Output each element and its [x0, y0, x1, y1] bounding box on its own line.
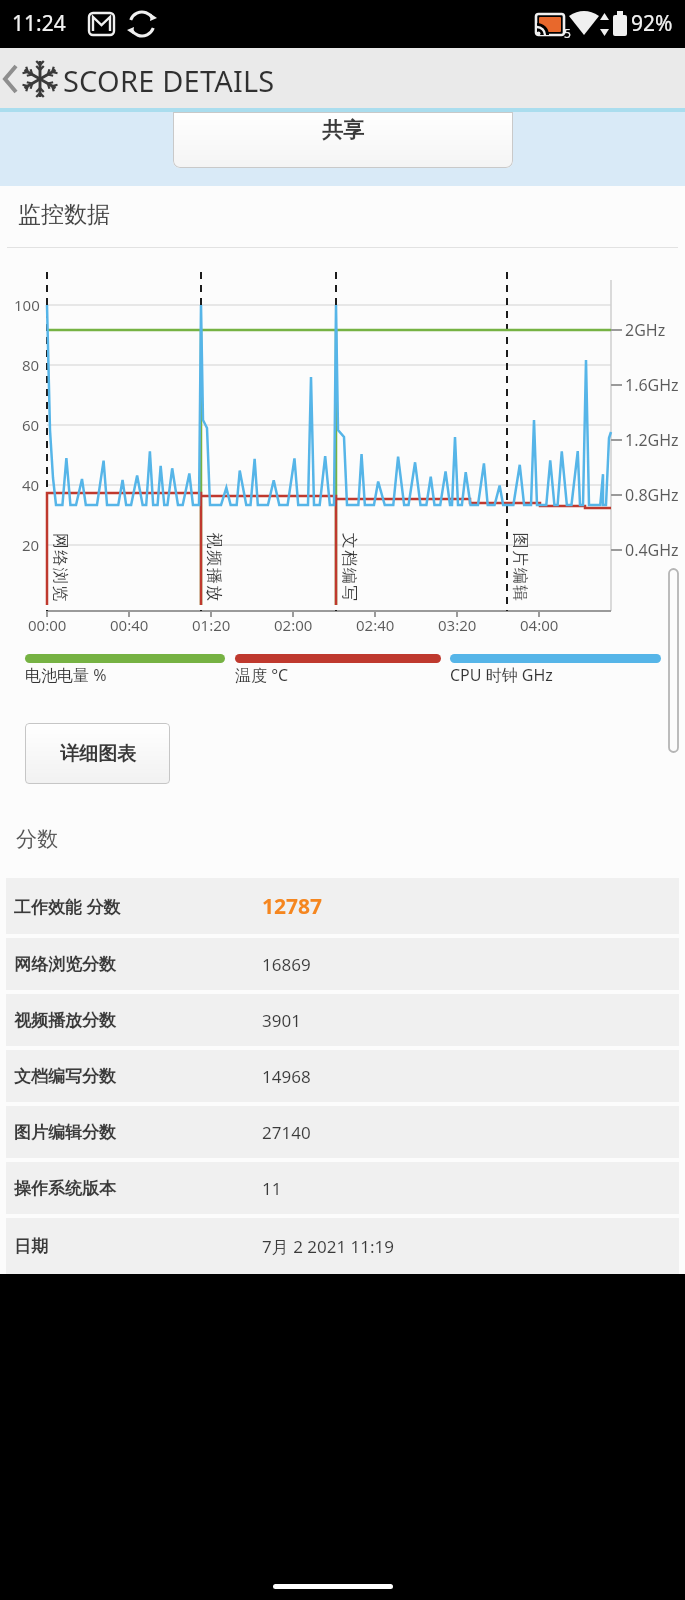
button[interactable] [6, 1106, 679, 1158]
staticText: 16869 [262, 953, 311, 976]
staticText: SCORE DETAILS [63, 61, 275, 100]
staticText: 文档编写分数 [14, 1066, 116, 1087]
staticText: 共享 [322, 117, 364, 143]
staticText: 03:20 [438, 615, 477, 635]
staticText: 工作效能 分数 [14, 895, 121, 918]
staticText: 14968 [262, 1065, 311, 1088]
button[interactable]: 共享 [173, 112, 513, 168]
button[interactable] [6, 994, 679, 1046]
staticText: 1.2GHz [625, 429, 679, 451]
staticText: 0.4GHz [625, 539, 679, 561]
staticText: 操作系统版本 [14, 1178, 116, 1199]
staticText: 网络浏览 [50, 532, 70, 602]
button[interactable] [6, 878, 679, 934]
staticText: 00:00 [28, 615, 67, 635]
staticText: 12787 [262, 892, 323, 921]
staticText: 02:40 [356, 615, 395, 635]
staticText: 02:00 [274, 615, 313, 635]
staticText: 温度 °C [235, 664, 289, 686]
staticText: 60 [22, 415, 40, 435]
staticText: 40 [22, 475, 40, 495]
staticText: 3901 [262, 1009, 301, 1032]
button[interactable]: 详细图表 [25, 723, 170, 784]
staticText: 2GHz [625, 319, 666, 341]
staticText: 视频播放 [204, 532, 224, 602]
staticText: 1.6GHz [625, 374, 679, 396]
button[interactable] [6, 1218, 679, 1274]
button[interactable] [0, 58, 24, 102]
staticText: 11 [262, 1177, 282, 1200]
staticText: CPU 时钟 GHz [450, 664, 553, 686]
staticText: 详细图表 [60, 742, 136, 766]
staticText: 20 [22, 535, 40, 555]
staticText: 电池电量 % [25, 664, 107, 686]
staticText: 100 [14, 295, 40, 315]
button[interactable] [0, 48, 685, 108]
button[interactable] [6, 1050, 679, 1102]
staticText: 图片编辑 [510, 532, 530, 602]
staticText: 7月 2 2021 11:19 [262, 1235, 395, 1258]
staticText: 分数 [16, 826, 58, 852]
staticText: 27140 [262, 1121, 311, 1144]
staticText: 视频播放分数 [14, 1010, 116, 1031]
staticText: 0.8GHz [625, 484, 679, 506]
staticText: 图片编辑分数 [14, 1122, 116, 1143]
staticText: 5 [564, 25, 571, 41]
staticText: 文档编写 [339, 532, 359, 602]
staticText: 80 [22, 355, 40, 375]
staticText: 网络浏览分数 [14, 954, 116, 975]
staticText: 监控数据 [18, 200, 110, 229]
button[interactable] [6, 938, 679, 990]
staticText: 00:40 [110, 615, 149, 635]
staticText: 92% [631, 9, 673, 38]
staticText: 11:24 [12, 9, 66, 38]
staticText: 日期 [14, 1236, 48, 1257]
staticText: 04:00 [520, 615, 559, 635]
button[interactable] [6, 1162, 679, 1214]
staticText: 01:20 [192, 615, 231, 635]
